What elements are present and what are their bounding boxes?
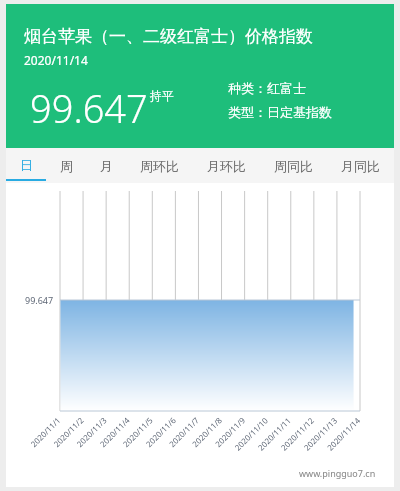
staticText: 月同比	[341, 158, 380, 174]
staticText: 日	[20, 157, 33, 173]
button[interactable]: 月同比	[327, 148, 394, 183]
button[interactable]: 月环比	[193, 148, 260, 183]
button[interactable]: 日	[6, 148, 46, 183]
staticText: 烟台苹果（一、二级红富士）价格指数	[24, 26, 313, 47]
button[interactable]: 周环比	[126, 148, 193, 183]
staticText: 持平	[150, 88, 174, 103]
staticText: 种类：红富士	[228, 80, 306, 96]
staticText: 99.647	[30, 82, 148, 134]
staticText: 周环比	[140, 158, 179, 174]
button[interactable]: 月	[86, 148, 126, 183]
button[interactable]: 周	[46, 148, 86, 183]
staticText: 类型：日定基指数	[228, 104, 332, 120]
staticText: 月环比	[207, 158, 246, 174]
staticText: 周	[60, 158, 73, 174]
staticText: 周同比	[274, 158, 313, 174]
staticText: 2020/11/14	[24, 52, 88, 68]
button[interactable]: 周同比	[260, 148, 327, 183]
staticText: 月	[100, 158, 113, 174]
